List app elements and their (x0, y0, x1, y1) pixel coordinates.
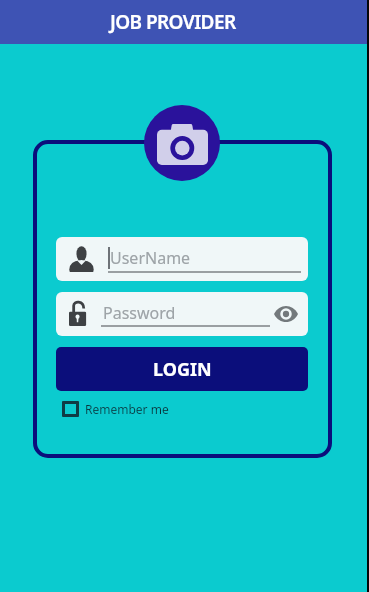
staticText: JOB PROVIDER (110, 9, 236, 35)
staticText: UserName (110, 247, 191, 269)
button[interactable]: Password (56, 292, 308, 336)
button[interactable]: LOGIN (56, 347, 308, 391)
button[interactable]: Show password (255, 296, 308, 332)
button[interactable]: Add profile photo (144, 105, 220, 181)
staticText: Remember me (85, 401, 169, 417)
button[interactable]: UserName (56, 237, 308, 281)
staticText: Password (103, 302, 176, 324)
button[interactable]: Remember me (62, 395, 169, 423)
staticText: LOGIN (153, 357, 212, 382)
